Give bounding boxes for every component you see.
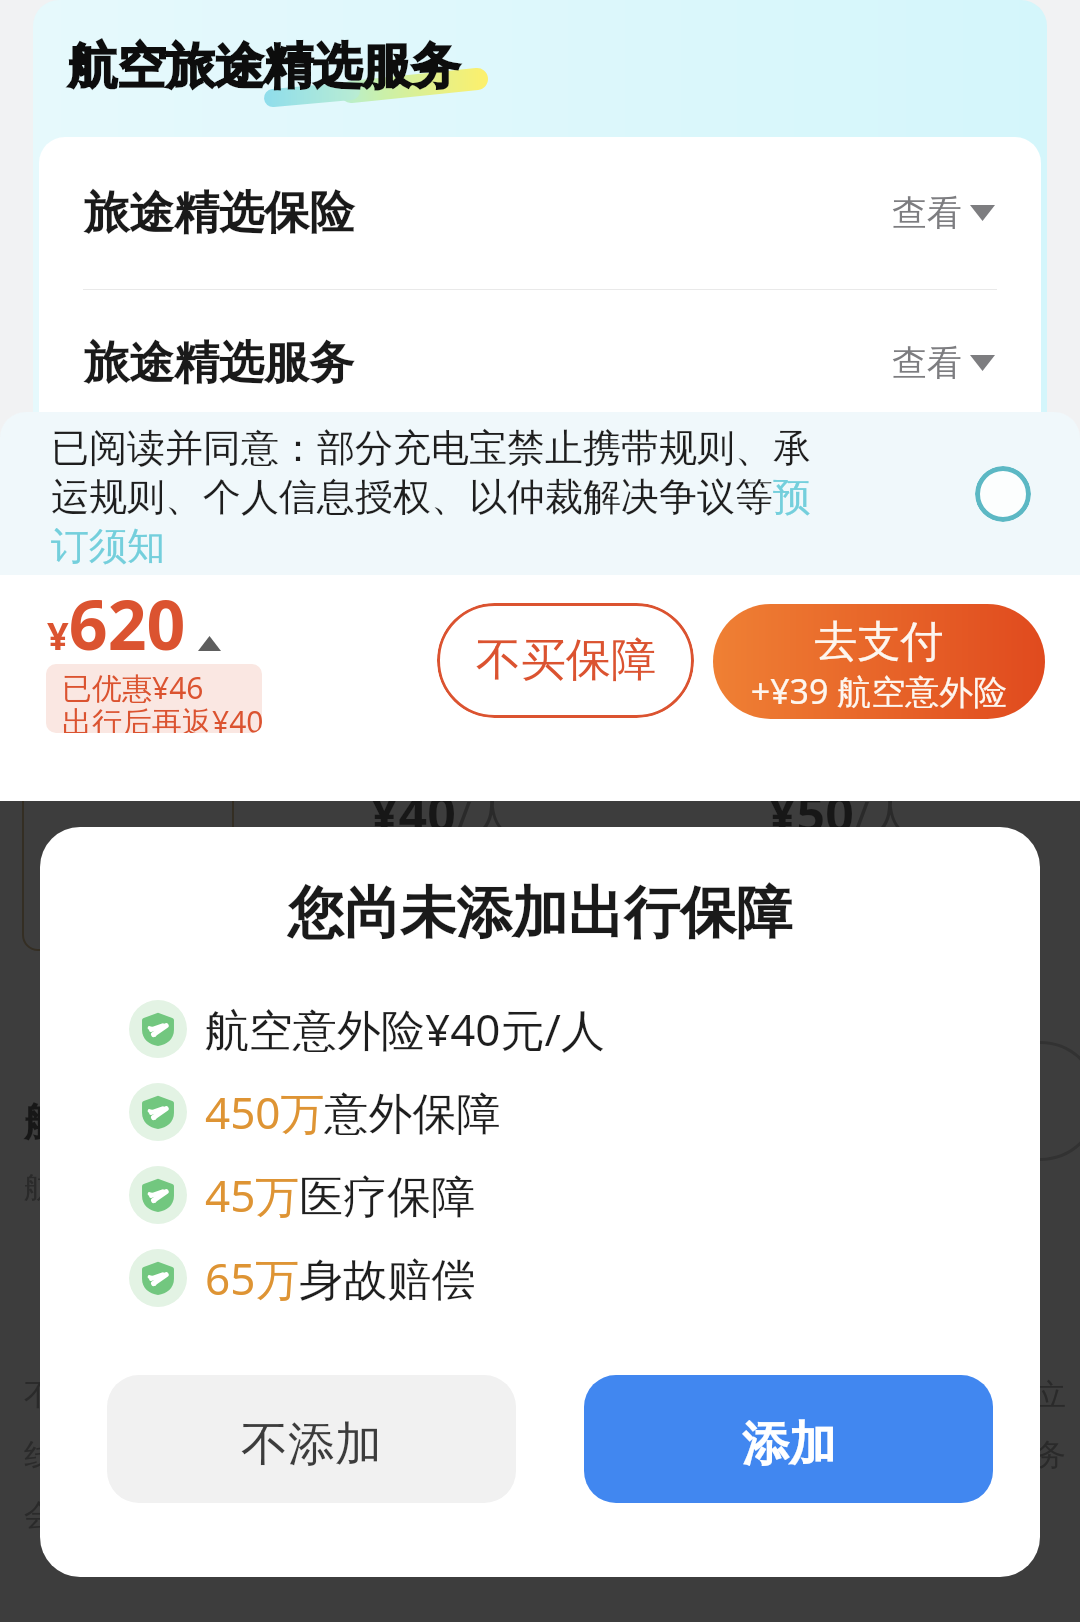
staticText: 不可 线上 会员 xyxy=(24,1376,84,1534)
staticText: 450万意外保障 xyxy=(205,1082,501,1142)
button[interactable]: 旅途精选服务 xyxy=(39,289,1041,412)
staticText: 已阅读并同意：部分充电宝禁止携带规则、承运规则、个人信息授权、以仲裁解决争议等预… xyxy=(51,424,841,570)
staticText: 旅途精选保险 xyxy=(84,185,354,242)
staticText: 45万医疗保障 xyxy=(205,1165,476,1225)
staticText: ¥50/人 xyxy=(768,801,912,847)
staticText: 查看 xyxy=(892,191,962,235)
button[interactable]: 旅途精选保险 xyxy=(39,137,1041,289)
staticText: 不买保障 xyxy=(476,632,656,689)
button[interactable]: 不添加 xyxy=(107,1375,516,1503)
staticText: 旅途精选服务 xyxy=(84,335,354,392)
staticText: 航空旅途精选服务 xyxy=(68,36,460,98)
staticText: ¥40/人 xyxy=(370,801,514,847)
staticText: 65万身故赔偿 xyxy=(205,1248,476,1308)
staticText: 立 务 xyxy=(1036,1376,1066,1474)
staticText: 添加 xyxy=(742,1415,836,1474)
staticText: 查看 xyxy=(892,341,962,385)
button[interactable]: 添加 xyxy=(584,1375,993,1503)
staticText: 航空意外保障 xyxy=(24,1169,204,1207)
button[interactable]: 去支付 xyxy=(713,604,1045,719)
button[interactable]: 同意预订须知 xyxy=(975,466,1031,522)
staticText: 航空意外险 xyxy=(24,1097,224,1147)
staticText: 您尚未添加出行保障 xyxy=(40,878,1040,949)
button[interactable]: 不买保障 xyxy=(437,603,694,718)
staticText: 航空意外险¥40元/人 xyxy=(205,999,605,1059)
staticText: +¥39 航空意外险 xyxy=(713,668,1045,714)
staticText: 已优惠¥46 出行后再返¥40 xyxy=(62,667,262,733)
staticText: 去支付 xyxy=(713,615,1045,669)
staticText: ¥620 xyxy=(47,577,186,670)
staticText: 不添加 xyxy=(241,1415,382,1474)
